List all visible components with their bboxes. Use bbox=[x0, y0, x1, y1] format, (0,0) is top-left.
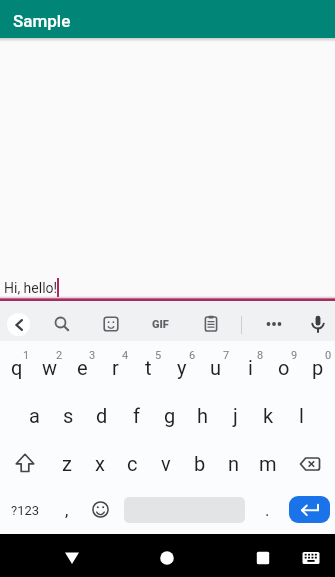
staticText: b bbox=[194, 452, 206, 475]
staticText: 3 bbox=[89, 349, 96, 362]
button[interactable]: t bbox=[132, 341, 165, 389]
staticText: z bbox=[62, 452, 72, 475]
staticText: v bbox=[161, 452, 171, 475]
staticText: p bbox=[312, 356, 324, 379]
staticText: ?123 bbox=[11, 503, 40, 518]
button[interactable]: f bbox=[119, 389, 153, 437]
button[interactable]: r bbox=[99, 341, 132, 389]
button[interactable]: i bbox=[233, 341, 267, 389]
staticText: t bbox=[145, 356, 152, 379]
button[interactable]: ?123 bbox=[0, 485, 50, 534]
button[interactable]: z bbox=[50, 437, 83, 485]
staticText: 5 bbox=[155, 349, 162, 362]
staticText: Hi, hello! bbox=[4, 280, 58, 296]
button[interactable]: g bbox=[153, 389, 186, 437]
button[interactable]: Hi, hello! bbox=[0, 267, 335, 301]
button[interactable]: h bbox=[186, 389, 219, 437]
button[interactable]: u bbox=[199, 341, 233, 389]
button[interactable]: m bbox=[251, 437, 285, 485]
button[interactable] bbox=[193, 301, 229, 341]
staticText: y bbox=[177, 356, 187, 379]
staticText: d bbox=[96, 404, 108, 427]
button[interactable]: Sample bbox=[0, 0, 335, 38]
staticText: w bbox=[42, 356, 58, 379]
button[interactable]: GIF bbox=[142, 301, 178, 341]
button[interactable] bbox=[7, 313, 30, 336]
staticText: f bbox=[133, 404, 140, 427]
staticText: r bbox=[112, 356, 119, 379]
button[interactable]: a bbox=[17, 389, 51, 437]
staticText: 4 bbox=[122, 349, 129, 362]
button[interactable] bbox=[284, 485, 335, 534]
staticText: 9 bbox=[291, 349, 298, 362]
button[interactable]: w bbox=[33, 341, 66, 389]
staticText: . bbox=[265, 500, 270, 520]
button[interactable]: j bbox=[219, 389, 252, 437]
button[interactable] bbox=[243, 534, 283, 577]
staticText: j bbox=[233, 404, 238, 427]
button[interactable]: s bbox=[51, 389, 85, 437]
button[interactable]: o bbox=[267, 341, 301, 389]
staticText: i bbox=[248, 356, 253, 379]
button[interactable]: b bbox=[183, 437, 217, 485]
button[interactable]: v bbox=[149, 437, 183, 485]
button[interactable]: y bbox=[165, 341, 199, 389]
button[interactable] bbox=[291, 534, 331, 577]
staticText: 0 bbox=[325, 349, 332, 362]
staticText: 6 bbox=[189, 349, 196, 362]
staticText: x bbox=[95, 452, 105, 475]
button[interactable] bbox=[93, 301, 129, 341]
button[interactable] bbox=[256, 301, 292, 341]
staticText: u bbox=[210, 356, 222, 379]
button[interactable] bbox=[0, 437, 50, 485]
button[interactable]: q bbox=[0, 341, 33, 389]
staticText: , bbox=[65, 500, 69, 520]
staticText: o bbox=[278, 356, 290, 379]
button[interactable]: p bbox=[301, 341, 335, 389]
staticText: 7 bbox=[223, 349, 230, 362]
staticText: m bbox=[259, 452, 277, 475]
button[interactable] bbox=[44, 301, 80, 341]
button[interactable] bbox=[147, 534, 187, 577]
staticText: l bbox=[299, 404, 304, 427]
button[interactable]: , bbox=[50, 485, 83, 534]
button[interactable]: d bbox=[85, 389, 119, 437]
staticText: k bbox=[263, 404, 274, 427]
staticText: GIF bbox=[152, 318, 169, 331]
button[interactable] bbox=[52, 534, 92, 577]
staticText: a bbox=[29, 404, 40, 427]
staticText: g bbox=[164, 404, 176, 427]
staticText: 1 bbox=[23, 349, 30, 362]
staticText: h bbox=[197, 404, 209, 427]
staticText: 8 bbox=[257, 349, 264, 362]
staticText: n bbox=[228, 452, 240, 475]
button[interactable]: l bbox=[285, 389, 318, 437]
button[interactable]: . bbox=[251, 485, 284, 534]
button[interactable]: k bbox=[252, 389, 285, 437]
button[interactable] bbox=[83, 485, 117, 534]
staticText: q bbox=[11, 356, 23, 379]
button[interactable]: x bbox=[83, 437, 116, 485]
button[interactable] bbox=[285, 437, 335, 485]
staticText: Sample bbox=[13, 11, 71, 31]
button[interactable] bbox=[300, 301, 335, 341]
staticText: c bbox=[127, 452, 138, 475]
staticText: s bbox=[63, 404, 74, 427]
button[interactable] bbox=[117, 485, 251, 534]
staticText: 2 bbox=[56, 349, 63, 362]
button[interactable]: c bbox=[116, 437, 149, 485]
button[interactable]: n bbox=[217, 437, 251, 485]
button[interactable]: e bbox=[66, 341, 99, 389]
staticText: e bbox=[77, 356, 88, 379]
